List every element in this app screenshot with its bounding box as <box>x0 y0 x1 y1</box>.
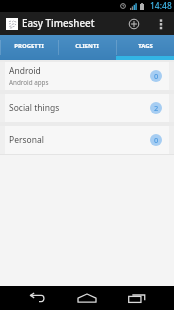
button[interactable]: TAGS <box>116 35 174 60</box>
staticText: Social things <box>9 102 60 114</box>
staticText: 0 <box>154 135 159 145</box>
staticText: Android <box>9 65 41 77</box>
staticText: Android apps <box>9 78 49 87</box>
button[interactable]: More options <box>147 12 174 35</box>
staticText: 0 <box>154 71 159 81</box>
button[interactable]: Home <box>72 286 102 310</box>
staticText: Personal <box>9 134 44 146</box>
staticText: Easy Timesheet <box>22 17 95 30</box>
button[interactable]: Recents <box>122 286 152 310</box>
button[interactable]: PROGETTI <box>0 35 58 60</box>
button[interactable]: Add <box>120 12 147 35</box>
button[interactable]: CLIENTI <box>58 35 116 60</box>
staticText: TAGS <box>138 42 153 50</box>
staticText: CLIENTI <box>75 42 99 50</box>
staticText: 2 <box>154 103 159 113</box>
button[interactable]: Back <box>22 286 52 310</box>
button[interactable]: Android <box>5 62 169 90</box>
staticText: 14:48 <box>150 0 172 12</box>
staticText: PROGETTI <box>14 42 44 50</box>
button[interactable]: Social things <box>5 94 169 122</box>
button[interactable]: Personal <box>5 126 169 154</box>
